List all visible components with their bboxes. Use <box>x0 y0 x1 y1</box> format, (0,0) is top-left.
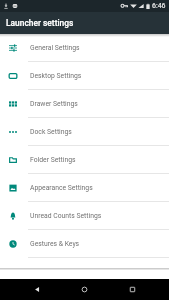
button[interactable]: Back <box>27 279 48 300</box>
button[interactable]: Unread Counts Settings <box>0 202 169 229</box>
staticText: General Settings <box>30 44 80 52</box>
staticText: Launcher settings <box>6 18 74 28</box>
staticText: Gestures & Keys <box>30 240 80 248</box>
staticText: Unread Counts Settings <box>30 212 102 220</box>
button[interactable]: Dock Settings <box>0 118 169 145</box>
button[interactable]: Folder Settings <box>0 146 169 173</box>
staticText: Desktop Settings <box>30 72 82 80</box>
button[interactable]: General Settings <box>0 34 169 61</box>
staticText: Dock Settings <box>30 128 72 136</box>
staticText: Appearance Settings <box>30 184 93 192</box>
button[interactable]: Recents <box>122 279 143 300</box>
button[interactable]: Launcher settings <box>0 12 169 34</box>
button[interactable]: Gestures & Keys <box>0 230 169 257</box>
button[interactable]: Home <box>74 279 95 300</box>
button[interactable]: Desktop Settings <box>0 62 169 89</box>
staticText: Drawer Settings <box>30 100 78 108</box>
staticText: 6:46 <box>152 2 166 10</box>
staticText: Folder Settings <box>30 156 76 164</box>
button[interactable]: Drawer Settings <box>0 90 169 117</box>
button[interactable]: Appearance Settings <box>0 174 169 201</box>
